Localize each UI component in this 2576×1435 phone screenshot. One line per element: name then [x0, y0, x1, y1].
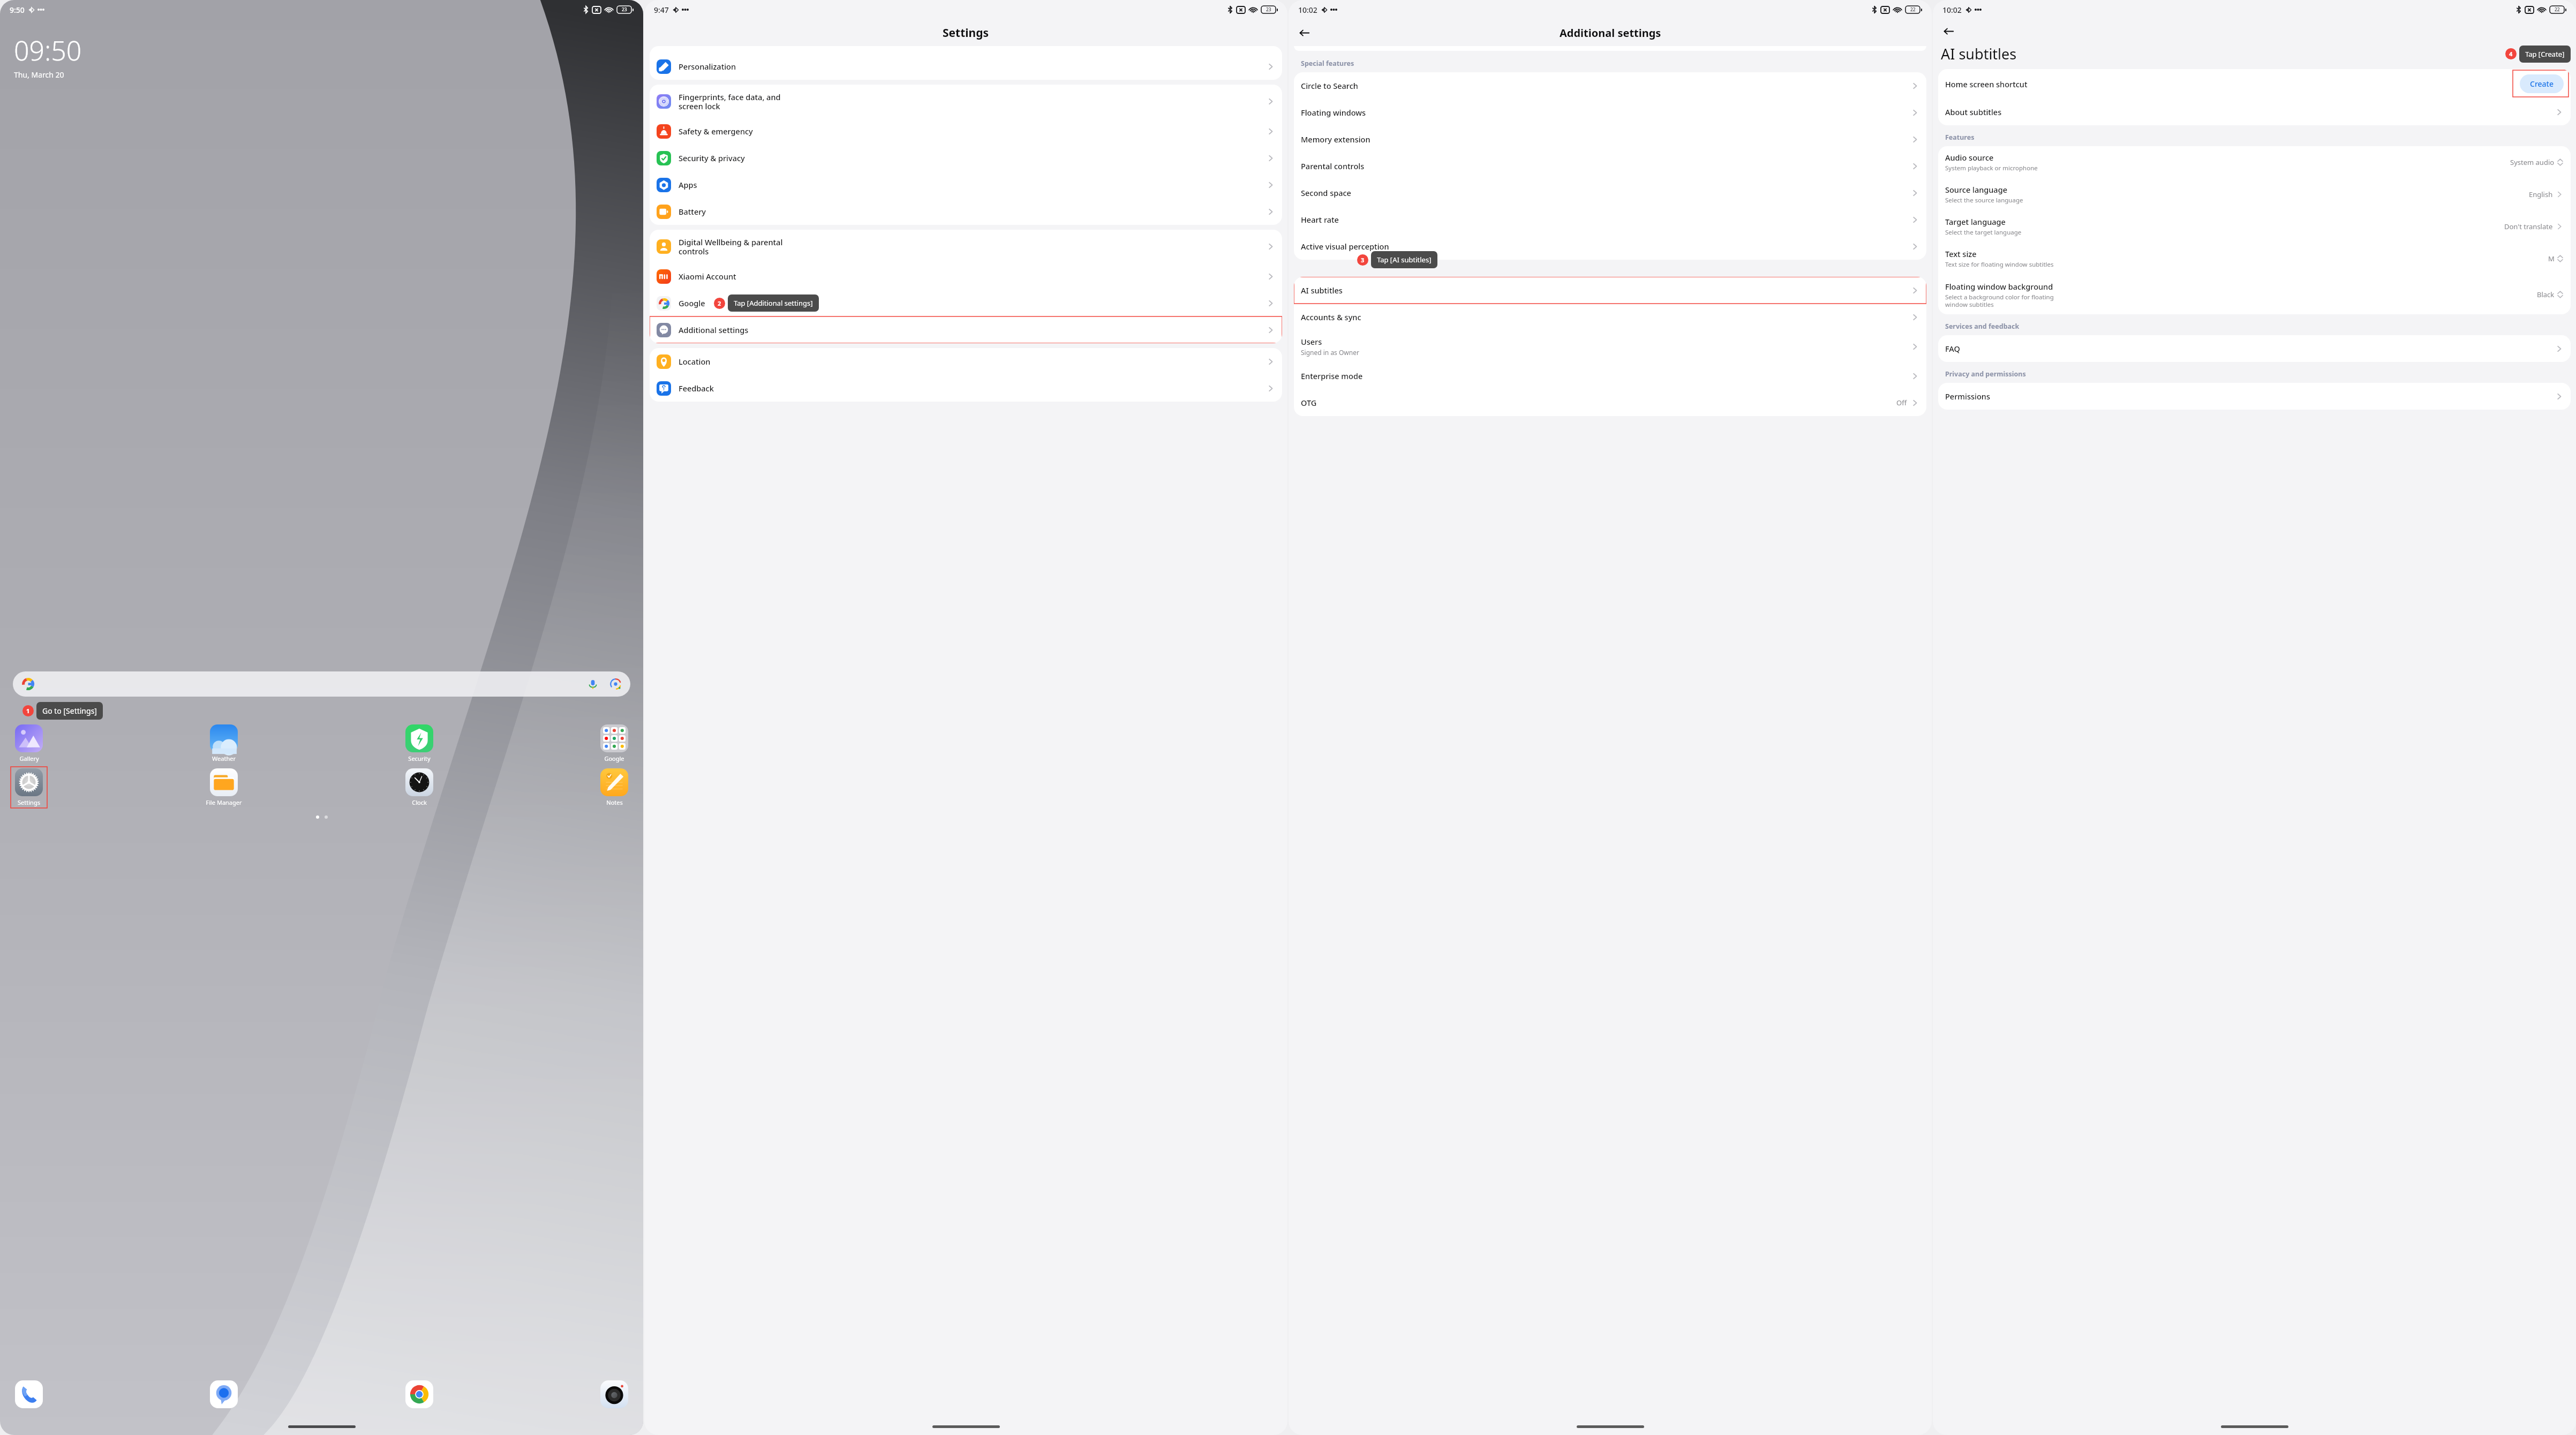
staticText: M	[2548, 254, 2555, 263]
staticText: Apps	[679, 179, 1266, 190]
button[interactable]: Permissions	[1938, 383, 2571, 410]
button[interactable]: Digital Wellbeing & parental controls	[650, 230, 1282, 263]
staticText: Text size	[1945, 248, 1977, 259]
button[interactable]: Circle to Search	[1294, 72, 1926, 99]
button[interactable]: Safety & emergency	[650, 118, 1282, 145]
staticText: Don't translate	[2504, 222, 2553, 231]
staticText: Text size for floating window subtitles	[1945, 260, 2054, 269]
staticText: 10:02	[1942, 5, 1962, 15]
button[interactable]: Personalization	[650, 53, 1282, 80]
button[interactable]: Back	[1296, 25, 1312, 41]
staticText: Location	[679, 356, 1266, 367]
staticText: Services and feedback	[1945, 322, 2020, 331]
staticText: Select a background color for floating w…	[1945, 293, 2054, 308]
button[interactable]: Heart rate	[1294, 206, 1926, 233]
staticText: Security & privacy	[679, 153, 1266, 163]
button[interactable]: Create	[2520, 74, 2564, 93]
staticText: Xiaomi Account	[679, 271, 1266, 282]
staticText: Circle to Search	[1301, 80, 1358, 91]
button[interactable]	[13, 671, 630, 697]
button[interactable]: Floating windows	[1294, 99, 1926, 126]
button[interactable]: Settings	[11, 767, 47, 808]
staticText: English	[2529, 190, 2553, 199]
staticText: Black	[2537, 290, 2555, 299]
button[interactable]: About subtitles	[1938, 99, 2571, 125]
button[interactable]: Weather	[206, 723, 242, 764]
staticText: 1	[26, 707, 30, 715]
staticText: Settings	[18, 798, 40, 806]
button[interactable]: Back	[1940, 23, 1956, 39]
staticText: Digital Wellbeing & parental controls	[679, 237, 1266, 256]
button[interactable]: Google	[596, 723, 632, 764]
button[interactable]: Audio source	[1938, 146, 2571, 178]
staticText: Source language	[1945, 184, 2007, 195]
staticText: 9:47	[654, 5, 669, 15]
staticText: Google	[679, 298, 1266, 308]
staticText: Fingerprints, face data, and screen lock	[679, 92, 1266, 111]
button[interactable]: Fingerprints, face data, and screen lock	[650, 85, 1282, 118]
staticText: 23	[622, 6, 627, 13]
staticText: Weather	[212, 754, 236, 762]
button[interactable]: Apps	[650, 171, 1282, 198]
staticText: Privacy and permissions	[1945, 369, 2026, 379]
button[interactable]: Feedback	[650, 375, 1282, 402]
staticText: About subtitles	[1945, 107, 2002, 117]
staticText: AI subtitles	[1941, 44, 2017, 64]
staticText: Settings	[943, 25, 989, 41]
button[interactable]: Security & privacy	[650, 145, 1282, 171]
staticText: Parental controls	[1301, 161, 1365, 171]
button[interactable]: Users	[1294, 330, 1926, 362]
staticText: 2	[718, 299, 721, 307]
staticText: Heart rate	[1301, 214, 1339, 225]
button[interactable]: Parental controls	[1294, 153, 1926, 179]
staticText: Clock	[412, 798, 427, 806]
staticText: Select the source language	[1945, 196, 2023, 205]
staticText: Go to [Settings]	[42, 706, 97, 716]
staticText: 9:50	[10, 5, 25, 15]
staticText: Audio source	[1945, 152, 1994, 163]
button[interactable]: Messages	[206, 1380, 242, 1408]
button[interactable]: Text size	[1938, 243, 2571, 275]
button[interactable]: Active visual perception	[1294, 233, 1926, 260]
staticText: Security	[408, 754, 431, 762]
staticText: Tap [Additional settings]	[734, 298, 813, 308]
button[interactable]: Additional settings	[650, 316, 1282, 343]
staticText: Floating window background	[1945, 281, 2053, 292]
button[interactable]: Memory extension	[1294, 126, 1926, 153]
button[interactable]: Xiaomi Account	[650, 263, 1282, 290]
button[interactable]: Phone	[11, 1380, 47, 1408]
button[interactable]: Security	[401, 723, 438, 764]
button[interactable]: Location	[650, 348, 1282, 375]
button[interactable]: OTG	[1294, 389, 1926, 416]
button[interactable]: Notes	[596, 767, 632, 808]
button[interactable]: Google	[650, 290, 1282, 316]
staticText: OTG	[1301, 397, 1317, 408]
staticText: Select the target language	[1945, 228, 2022, 237]
button[interactable]: Home screen shortcut	[1938, 69, 2571, 99]
staticText: 4	[2509, 50, 2513, 58]
button[interactable]: Battery	[650, 198, 1282, 225]
button[interactable]: File Manager	[206, 767, 242, 808]
staticText: Feedback	[679, 383, 1266, 394]
button[interactable]: Camera	[596, 1380, 632, 1408]
staticText: Floating windows	[1301, 107, 1366, 118]
button[interactable]: Second space	[1294, 179, 1926, 206]
staticText: Additional settings	[679, 324, 1266, 335]
button[interactable]: Floating window background	[1938, 275, 2571, 314]
button[interactable]: Clock	[401, 767, 438, 808]
button[interactable]: AI subtitles	[1294, 277, 1926, 304]
staticText: Home screen shortcut	[1945, 79, 2520, 89]
button[interactable]: Gallery	[11, 723, 47, 764]
staticText: 3	[1361, 256, 1365, 264]
button[interactable]: Accounts & sync	[1294, 304, 1926, 330]
button[interactable]: Target language	[1938, 210, 2571, 243]
button[interactable]: FAQ	[1938, 335, 2571, 362]
staticText: System audio	[2510, 157, 2555, 167]
button[interactable]: Chrome	[401, 1380, 438, 1408]
button[interactable]: Source language	[1938, 178, 2571, 210]
button[interactable]: Enterprise mode	[1294, 362, 1926, 389]
staticText: Memory extension	[1301, 134, 1370, 145]
staticText: Google	[604, 754, 624, 762]
staticText: Additional settings	[1560, 26, 1661, 40]
staticText: 22	[2555, 6, 2560, 13]
